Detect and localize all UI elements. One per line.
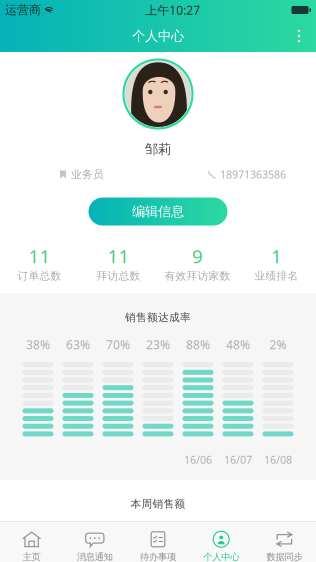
staticText: 48% xyxy=(226,337,250,352)
staticText: 有效拜访家数 xyxy=(164,269,230,282)
staticText: 18971363586 xyxy=(220,167,286,182)
staticText: 11 xyxy=(107,243,129,268)
staticText: 上午10:27 xyxy=(145,2,200,18)
staticText: 63% xyxy=(66,337,90,352)
button[interactable]: 待办事项 xyxy=(126,526,190,562)
staticText: 个人中心 xyxy=(203,551,239,562)
staticText: 9 xyxy=(192,243,203,268)
staticText: 邹莉 xyxy=(145,141,171,157)
staticText: 销售额达成率 xyxy=(125,311,191,324)
staticText: 订单总数 xyxy=(17,269,61,282)
staticText: 主页 xyxy=(23,551,41,562)
button[interactable]: 消息通知 xyxy=(63,526,126,562)
staticText: 个人中心 xyxy=(132,28,184,44)
staticText: 16/06 xyxy=(184,452,212,467)
staticText: 待办事项 xyxy=(140,551,176,562)
staticText: 1 xyxy=(271,243,282,268)
staticText: 88% xyxy=(186,337,210,352)
staticText: 23% xyxy=(146,337,170,352)
button[interactable]: 数据同步 xyxy=(253,526,316,562)
staticText: 2% xyxy=(269,337,286,352)
staticText: 拜访总数 xyxy=(96,269,140,282)
button[interactable]: 编辑信息 xyxy=(88,197,227,225)
staticText: 16/08 xyxy=(264,452,292,467)
staticText: 运营商 xyxy=(5,3,41,17)
button[interactable]: 主页 xyxy=(0,526,63,562)
button[interactable]: 个人中心 xyxy=(190,526,253,562)
staticText: 编辑信息 xyxy=(132,203,184,220)
button[interactable]: 更多 xyxy=(282,20,316,52)
staticText: 本周销售额 xyxy=(130,497,185,510)
staticText: 业绩排名 xyxy=(254,269,298,282)
staticText: 70% xyxy=(106,337,130,352)
staticText: 11 xyxy=(28,243,50,268)
staticText: 消息通知 xyxy=(77,551,113,562)
staticText: 16/07 xyxy=(224,452,252,467)
staticText: 业务员 xyxy=(71,168,104,181)
staticText: 38% xyxy=(26,337,50,352)
staticText: 数据同步 xyxy=(266,551,302,562)
